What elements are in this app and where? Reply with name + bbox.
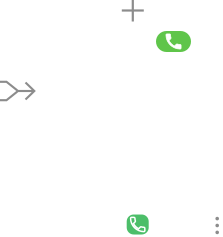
- button[interactable]: Add call: [120, 0, 146, 23]
- button[interactable]: More options: [207, 213, 223, 237]
- button[interactable]: Call: [127, 214, 149, 234]
- button[interactable]: Call: [156, 31, 191, 52]
